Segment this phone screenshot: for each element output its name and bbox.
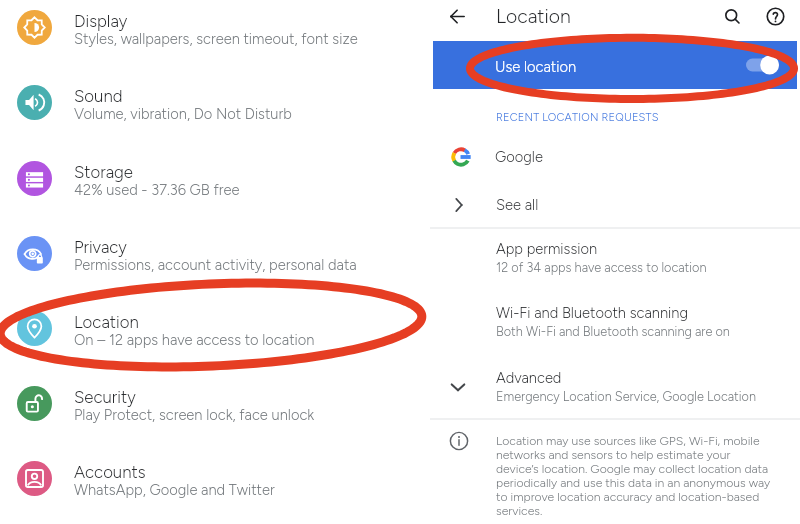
button[interactable]: Sound [0,65,430,140]
staticText: App permission [496,240,598,258]
button[interactable]: Security [0,366,430,441]
staticText: Google [495,148,543,166]
staticText: See all [496,196,539,214]
staticText: Display [74,11,128,31]
staticText: Sound [74,86,123,106]
staticText: Volume, vibration, Do Not Disturb [74,105,292,123]
staticText: Emergency Location Service, Google Locat… [496,389,756,404]
staticText: Location may use sources like GPS, Wi-Fi… [496,433,771,518]
button[interactable]: Google [430,133,800,181]
staticText: WhatsApp, Google and Twitter [74,481,275,499]
staticText: Location [74,312,139,332]
staticText: Play Protect, screen lock, face unlock [74,406,315,424]
button[interactable]: Back [441,0,473,32]
staticText: 12 of 34 apps have access to location [496,260,707,275]
button[interactable]: Help [759,0,791,32]
staticText: Security [74,387,136,407]
button[interactable]: Location [0,291,430,366]
staticText: On – 12 apps have access to location [74,331,315,349]
button[interactable]: App permission [430,228,800,280]
staticText: 42% used - 37.36 GB free [74,181,240,199]
staticText: Styles, wallpapers, screen timeout, font… [74,30,358,48]
button[interactable]: Wi-Fi and Bluetooth scanning [430,292,800,344]
button[interactable]: See all [430,182,800,228]
button[interactable]: Display [0,0,430,65]
button[interactable]: Search [716,0,748,32]
button[interactable]: Use location [433,41,797,89]
staticText: Permissions, account activity, personal … [74,256,357,274]
staticText: Both Wi-Fi and Bluetooth scanning are on [496,324,730,339]
button[interactable]: Accounts [0,441,430,516]
staticText: Location [496,5,571,28]
staticText: Storage [74,162,133,182]
button[interactable]: Privacy [0,216,430,291]
staticText: Advanced [496,369,562,387]
staticText: RECENT LOCATION REQUESTS [496,111,659,124]
staticText: Accounts [74,462,146,482]
button[interactable]: Storage [0,141,430,216]
staticText: Privacy [74,237,127,257]
staticText: Use location [495,58,577,76]
staticText: Wi-Fi and Bluetooth scanning [496,304,688,322]
button[interactable]: Advanced [430,366,800,418]
